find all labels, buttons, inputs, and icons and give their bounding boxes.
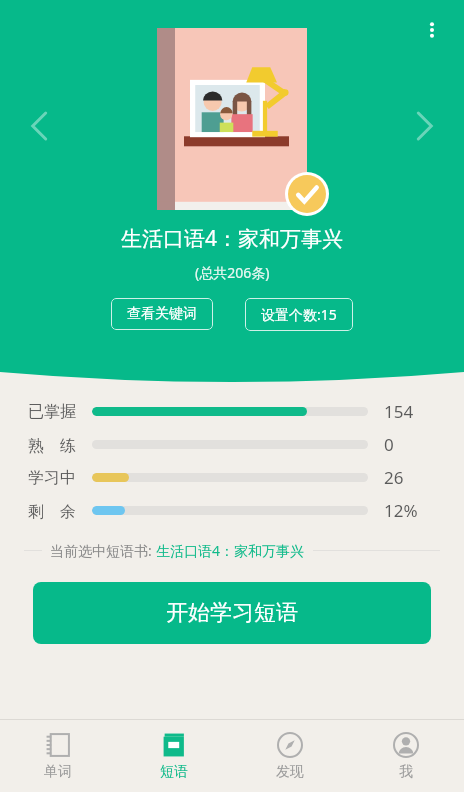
staticText: 发现 [276,763,304,781]
button[interactable]: More options [410,8,454,52]
staticText: 生活口语4：家和万事兴 [121,224,344,253]
staticText: 剩 余 [28,500,76,522]
button[interactable]: 查看关键词 [111,298,213,330]
staticText: 26 [384,466,404,489]
button[interactable]: 单词 [0,720,116,792]
staticText: 12% [384,499,418,522]
staticText: 查看关键词 [127,305,197,323]
staticText: 设置个数:15 [261,305,337,324]
staticText: 我 [399,763,413,781]
button[interactable]: 发现 [232,720,348,792]
staticText: 单词 [44,763,72,781]
staticText: 开始学习短语 [166,599,298,627]
staticText: 0 [384,433,394,456]
staticText: 生活口语4：家和万事兴 [156,541,305,560]
button[interactable]: Next book [398,100,450,152]
button[interactable]: 短语 [116,720,232,792]
button[interactable]: Previous book [14,100,66,152]
button[interactable]: 设置个数:15 [245,298,353,331]
button[interactable]: 我 [348,720,464,792]
staticText: 已掌握 [28,402,76,422]
staticText: 当前选中短语书: [50,541,156,560]
staticText: 154 [384,400,414,423]
staticText: 短语 [160,763,188,781]
staticText: 熟 练 [28,434,76,456]
button[interactable]: 开始学习短语 [33,582,431,644]
staticText: (总共206条) [195,263,270,282]
staticText: 学习中 [28,468,76,488]
